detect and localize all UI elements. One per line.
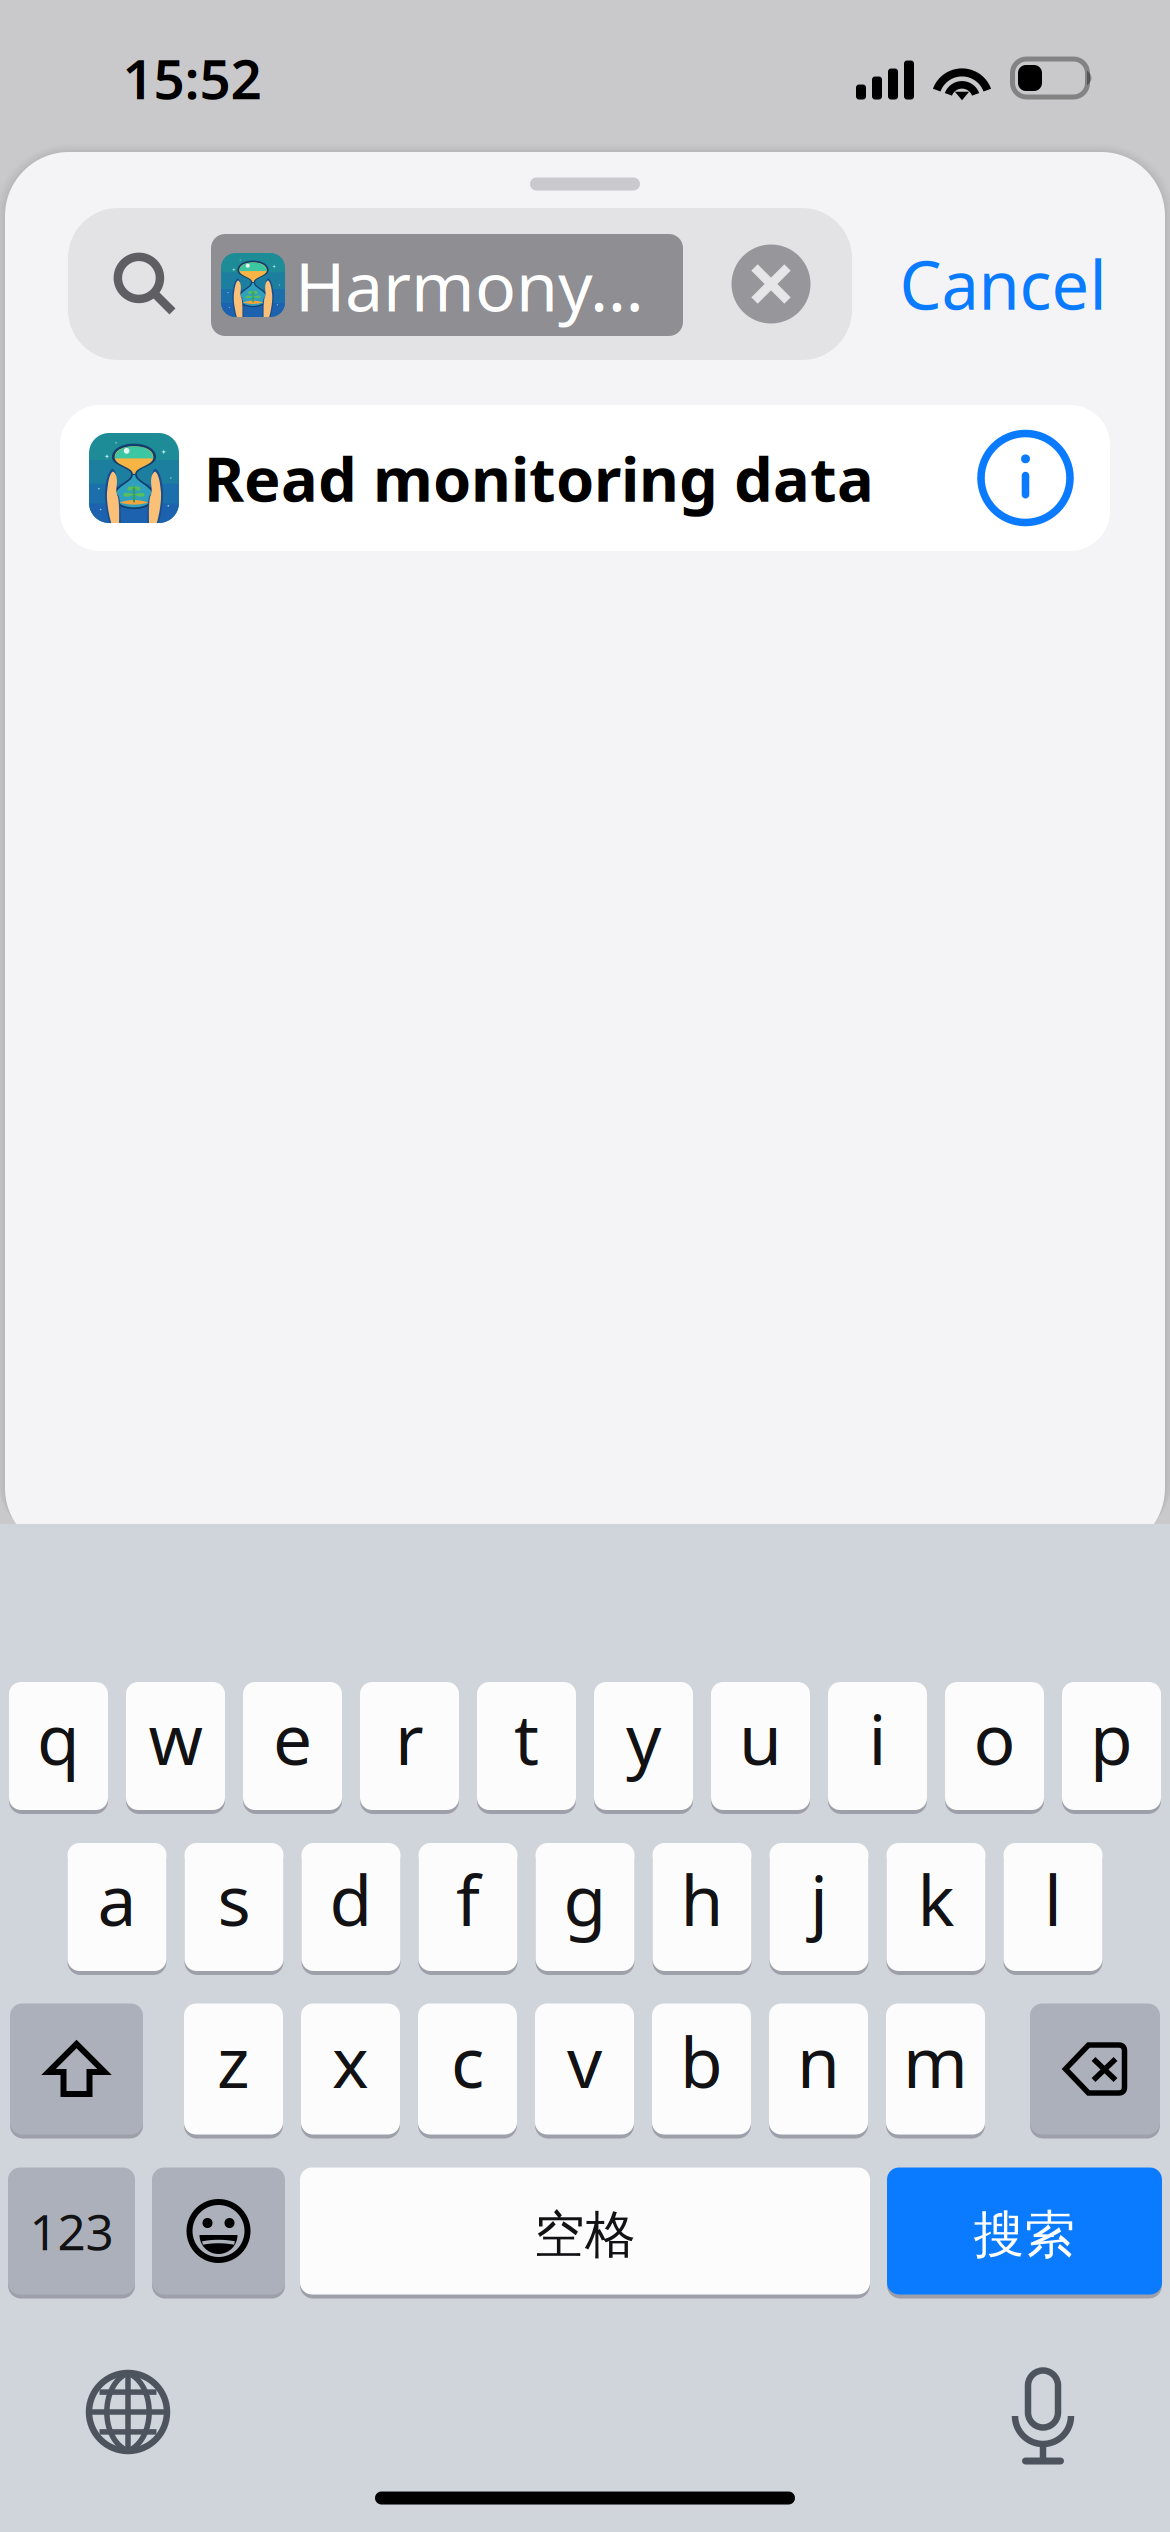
button[interactable]: c bbox=[418, 2001, 517, 2136]
staticText: l bbox=[1044, 1853, 1062, 1945]
staticText: w bbox=[148, 1692, 202, 1784]
button[interactable]: Cancel bbox=[878, 208, 1128, 360]
staticText: z bbox=[217, 2015, 250, 2107]
staticText: t bbox=[514, 1692, 539, 1784]
button[interactable]: g bbox=[535, 1841, 634, 1973]
button[interactable]: 空格 bbox=[300, 2165, 870, 2296]
staticText: o bbox=[973, 1692, 1015, 1784]
button[interactable]: k bbox=[886, 1841, 985, 1973]
button[interactable] bbox=[10, 2001, 143, 2136]
staticText: h bbox=[680, 1853, 723, 1945]
button[interactable]: j bbox=[769, 1841, 868, 1973]
staticText: 空格 bbox=[534, 2204, 636, 2266]
staticText: c bbox=[451, 2015, 484, 2107]
staticText: Harmony… bbox=[295, 240, 644, 330]
button[interactable]: b bbox=[652, 2001, 751, 2136]
staticText: 123 bbox=[29, 2198, 113, 2264]
button[interactable]: l bbox=[1003, 1841, 1102, 1973]
staticText: d bbox=[329, 1853, 372, 1945]
button[interactable]: n bbox=[769, 2001, 868, 2136]
staticText: v bbox=[567, 2015, 602, 2107]
button[interactable]: a bbox=[67, 1841, 166, 1973]
button[interactable]: y bbox=[594, 1680, 693, 1812]
staticText: s bbox=[217, 1853, 250, 1945]
staticText: u bbox=[739, 1692, 782, 1784]
button[interactable]: i bbox=[828, 1680, 927, 1812]
staticText: a bbox=[97, 1853, 136, 1945]
button[interactable]: p bbox=[1062, 1680, 1161, 1812]
button[interactable]: e bbox=[243, 1680, 342, 1812]
staticText: g bbox=[563, 1853, 606, 1945]
button[interactable]: Dictation bbox=[988, 2357, 1098, 2467]
button[interactable] bbox=[152, 2165, 285, 2296]
staticText: 15:52 bbox=[122, 42, 261, 114]
button[interactable]: u bbox=[711, 1680, 810, 1812]
staticText: p bbox=[1090, 1692, 1133, 1784]
staticText: e bbox=[273, 1692, 312, 1784]
button[interactable]: q bbox=[9, 1680, 108, 1812]
staticText: n bbox=[797, 2015, 840, 2107]
button[interactable]: m bbox=[886, 2001, 985, 2136]
staticText: Read monitoring data bbox=[204, 437, 874, 519]
staticText: b bbox=[680, 2015, 723, 2107]
staticText: 搜索 bbox=[973, 2204, 1075, 2266]
button[interactable]: f bbox=[418, 1841, 517, 1973]
button[interactable]: Clear search text bbox=[731, 244, 810, 323]
button[interactable]: h bbox=[652, 1841, 751, 1973]
button[interactable]: Harmony… bbox=[211, 234, 683, 336]
staticText: k bbox=[917, 1853, 954, 1945]
staticText: y bbox=[626, 1692, 661, 1784]
button[interactable]: Switch keyboard bbox=[73, 2357, 183, 2467]
staticText: q bbox=[37, 1692, 80, 1784]
button[interactable]: t bbox=[477, 1680, 576, 1812]
button[interactable]: Read monitoring data bbox=[60, 405, 1110, 551]
staticText: i bbox=[868, 1692, 886, 1784]
button[interactable] bbox=[1030, 2001, 1160, 2136]
button[interactable]: z bbox=[184, 2001, 283, 2136]
button[interactable]: 123 bbox=[8, 2165, 135, 2296]
button[interactable]: o bbox=[945, 1680, 1044, 1812]
button[interactable]: r bbox=[360, 1680, 459, 1812]
button[interactable]: v bbox=[535, 2001, 634, 2136]
staticText: f bbox=[456, 1853, 480, 1945]
staticText: r bbox=[395, 1692, 424, 1784]
staticText: Cancel bbox=[899, 240, 1106, 328]
button[interactable]: w bbox=[126, 1680, 225, 1812]
button[interactable]: 搜索 bbox=[887, 2165, 1162, 2296]
button[interactable]: s bbox=[184, 1841, 283, 1973]
staticText: m bbox=[903, 2015, 968, 2107]
button[interactable]: d bbox=[301, 1841, 400, 1973]
staticText: x bbox=[332, 2015, 369, 2107]
staticText: j bbox=[810, 1853, 828, 1945]
button[interactable]: x bbox=[301, 2001, 400, 2136]
